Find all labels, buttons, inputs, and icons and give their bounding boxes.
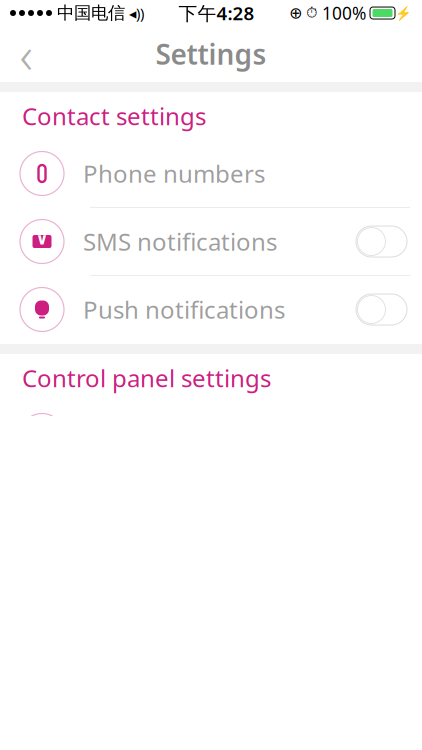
staticText: 100% — [322, 1, 366, 24]
staticText: ◂)) — [129, 3, 144, 23]
staticText: Push notifications — [83, 294, 285, 325]
staticText: ⊕ — [289, 4, 302, 22]
staticText: 下午4:28 — [178, 1, 254, 25]
button[interactable]: Back — [0, 29, 52, 79]
staticText: Phone numbers — [83, 158, 265, 189]
staticText: Control panel settings — [22, 362, 271, 394]
button[interactable]: ∨ — [0, 208, 422, 276]
staticText: SMS notifications — [83, 226, 277, 257]
staticText: ⚡ — [395, 5, 412, 21]
staticText: Contact settings — [22, 100, 206, 132]
staticText: ∨ — [35, 230, 48, 248]
button[interactable]: Push notifications — [0, 276, 422, 344]
button[interactable]: Phone numbers — [0, 140, 422, 208]
staticText: 中国电信 — [57, 2, 125, 24]
staticText: Settings — [155, 35, 266, 73]
staticText: ⏱ — [306, 6, 317, 20]
staticText: ‹ — [19, 20, 32, 88]
